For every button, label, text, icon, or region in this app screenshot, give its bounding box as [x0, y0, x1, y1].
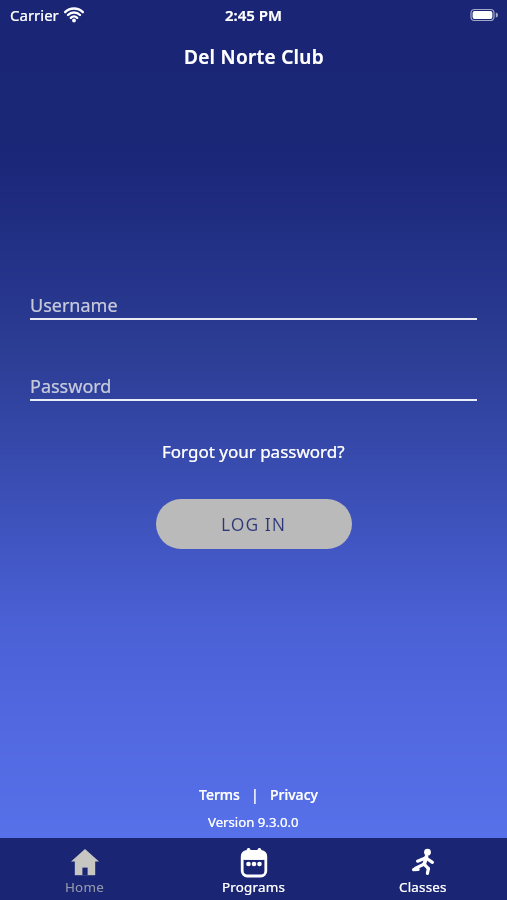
staticText: Del Norte Club [184, 44, 324, 70]
button[interactable]: Privacy [270, 785, 318, 804]
button[interactable]: Terms [199, 785, 240, 804]
staticText: 2:45 PM [225, 5, 282, 25]
staticText: | [240, 785, 270, 804]
button[interactable]: Programs [169, 838, 338, 900]
button[interactable]: Home [0, 838, 169, 900]
staticText: Classes [399, 878, 447, 896]
staticText: LOG IN [221, 512, 287, 536]
staticText: Home [65, 878, 104, 896]
staticText: Version 9.3.0.0 [208, 813, 299, 831]
button[interactable]: Classes [338, 838, 507, 900]
button[interactable]: Username [30, 293, 477, 320]
staticText: Carrier [10, 5, 59, 25]
button[interactable]: Forgot your password? [162, 440, 345, 463]
staticText: Programs [222, 878, 286, 896]
staticText: Password [30, 374, 112, 399]
button[interactable]: Password [30, 374, 477, 401]
button[interactable]: LOG IN [156, 499, 352, 549]
staticText: Username [30, 293, 118, 318]
